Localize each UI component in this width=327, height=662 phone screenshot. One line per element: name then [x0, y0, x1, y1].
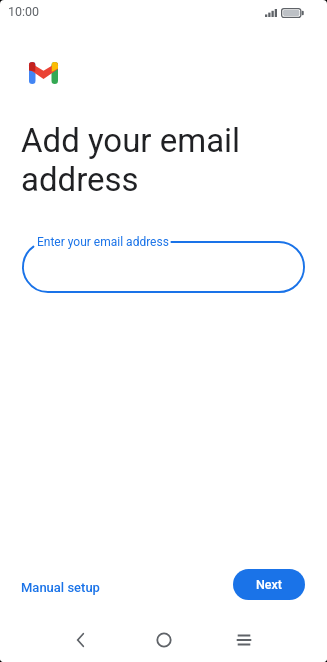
staticText: Enter your email address — [37, 235, 169, 249]
button[interactable]: Back — [56, 618, 104, 662]
button[interactable]: Next — [233, 569, 305, 600]
staticText: Next — [256, 577, 283, 592]
button[interactable]: Recent apps — [220, 618, 268, 662]
button[interactable]: Home — [140, 618, 188, 662]
button[interactable]: Manual setup — [13, 573, 108, 602]
staticText: Manual setup — [21, 580, 100, 595]
staticText: Add your email address — [21, 121, 251, 199]
staticText: 10:00 — [8, 4, 40, 19]
